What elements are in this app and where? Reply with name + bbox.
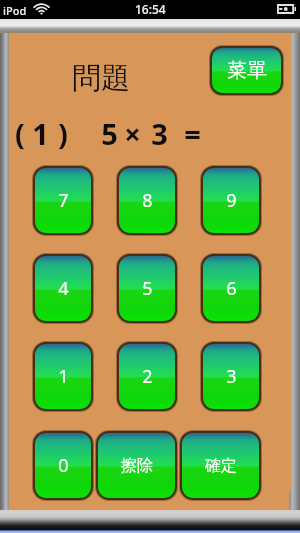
staticText: 8 [142,188,153,213]
button[interactable]: 8 [117,166,177,235]
staticText: 菜單 [227,58,267,83]
staticText: 1 [32,114,49,153]
button[interactable]: 確定 [180,431,261,500]
staticText: 4 [58,276,69,301]
button[interactable]: 3 [201,342,261,411]
staticText: 確定 [205,456,237,476]
staticText: 9 [226,188,237,213]
staticText: 16:54 [135,1,166,17]
staticText: 0 [58,453,69,478]
staticText: 問題 [72,60,130,97]
staticText: 3 [151,114,168,153]
button[interactable]: 6 [201,254,261,323]
staticText: × [124,114,141,153]
staticText: 5 [142,276,153,301]
button[interactable]: 2 [117,342,177,411]
staticText: 7 [58,188,69,213]
staticText: 3 [226,364,237,389]
staticText: 6 [226,276,237,301]
button[interactable]: 4 [33,254,93,323]
staticText: iPod [3,3,27,18]
button[interactable]: 0 [33,431,93,500]
button[interactable]: 菜單 [210,46,283,95]
staticText: 擦除 [121,456,153,476]
staticText: = [184,114,201,153]
button[interactable]: 7 [33,166,93,235]
staticText: ( [15,114,25,153]
staticText: 2 [142,364,153,389]
staticText: 1 [58,364,69,389]
button[interactable]: 5 [117,254,177,323]
staticText: ) [58,114,68,153]
staticText: 5 [101,114,118,153]
button[interactable]: 9 [201,166,261,235]
button[interactable]: 1 [33,342,93,411]
button[interactable]: 擦除 [96,431,177,500]
